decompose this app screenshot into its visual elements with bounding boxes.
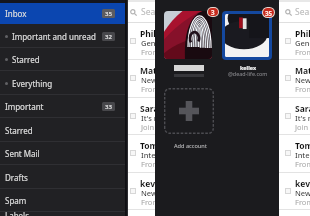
staticText: From: (141, 47, 162, 57)
button[interactable]: Starred (0, 118, 125, 142)
staticText: 3 (211, 8, 215, 16)
staticText: 33 (105, 103, 112, 111)
staticText: Interes (141, 150, 167, 160)
staticText: Join i (141, 122, 159, 132)
staticText: kevin (140, 178, 164, 190)
staticText: Everything (12, 78, 53, 89)
button[interactable]: Spam (0, 188, 125, 212)
staticText: General (141, 38, 170, 48)
button[interactable]: kevin (279, 172, 310, 210)
staticText: From: (295, 47, 310, 57)
staticText: Phil (295, 28, 310, 40)
staticText: Matt (140, 65, 161, 77)
staticText: Add account (174, 142, 207, 150)
staticText: Phil (140, 28, 156, 40)
button[interactable]: Phil (127, 22, 167, 60)
button[interactable]: Add account (164, 88, 214, 134)
button[interactable]: Starred (0, 47, 125, 71)
button[interactable]: Labels (0, 210, 125, 216)
button[interactable]: Account kellex (225, 14, 269, 57)
staticText: Important and unread (12, 31, 96, 42)
button[interactable]: Search (127, 2, 167, 22)
staticText: From: (295, 159, 310, 169)
staticText: kevin (295, 178, 310, 190)
button[interactable]: Sarah (127, 97, 167, 135)
staticText: 35 (265, 9, 273, 17)
button[interactable]: Tom (279, 134, 310, 172)
button[interactable]: Tom (127, 134, 167, 172)
staticText: @dead-life.com (228, 70, 268, 77)
staticText: Spam (5, 195, 27, 206)
staticText: From: (295, 197, 310, 207)
button[interactable]: Search (279, 2, 310, 22)
staticText: From: (141, 84, 162, 94)
button[interactable]: Sent Mail (0, 141, 125, 165)
staticText: kellex (240, 64, 256, 71)
staticText: News (295, 188, 310, 198)
staticText: News (141, 75, 161, 85)
button[interactable]: Important (0, 94, 125, 118)
button[interactable]: Matt (127, 59, 167, 97)
button[interactable]: Everything (0, 71, 125, 95)
staticText: Matt (295, 65, 310, 77)
button[interactable]: kevin (127, 172, 167, 210)
button[interactable]: Sarah (279, 97, 310, 135)
button[interactable]: Matt (279, 59, 310, 97)
staticText: Sent Mail (5, 148, 40, 159)
staticText: Search (141, 6, 167, 18)
staticText: From: (141, 197, 162, 207)
button[interactable]: Important and unread (0, 24, 125, 48)
staticText: Interes (295, 150, 310, 160)
staticText: It's no (141, 113, 164, 123)
staticText: Starred (12, 54, 40, 65)
staticText: Drafts (5, 172, 28, 183)
staticText: Search (295, 6, 310, 18)
staticText: It's no (295, 113, 310, 123)
staticText: News (295, 75, 310, 85)
staticText: Inbox (5, 8, 27, 19)
staticText: Sarah (140, 103, 165, 115)
button[interactable]: Drafts (0, 165, 125, 189)
staticText: From: (295, 84, 310, 94)
staticText: Starred (5, 125, 33, 136)
button[interactable]: Inbox (0, 3, 125, 24)
staticText: 32 (105, 33, 112, 41)
staticText: Tom (295, 140, 310, 152)
staticText: Labels (5, 210, 30, 216)
staticText: Sarah (295, 103, 310, 115)
staticText: Tom (140, 140, 158, 152)
staticText: General (295, 38, 310, 48)
staticText: Important (5, 101, 44, 112)
button[interactable]: Switch account (164, 11, 212, 59)
staticText: Join i (295, 122, 310, 132)
staticText: News (141, 188, 161, 198)
button[interactable]: Phil (279, 22, 310, 60)
staticText: From: (141, 159, 162, 169)
staticText: 35 (105, 10, 112, 18)
